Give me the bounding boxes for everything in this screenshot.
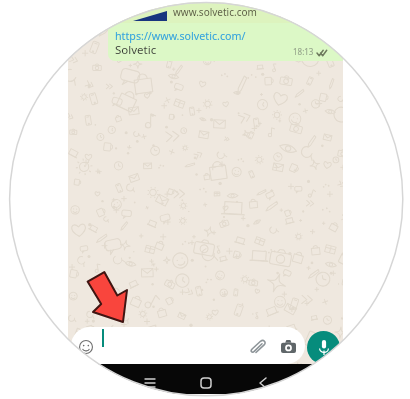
button[interactable]: Camera	[270, 328, 306, 364]
button[interactable]	[108, 23, 343, 61]
button[interactable]: Recents	[140, 373, 160, 393]
staticText: Solvetic	[115, 42, 157, 58]
staticText: 18:13	[293, 46, 314, 57]
button[interactable]: Attach	[239, 330, 275, 366]
button[interactable]: Voice message	[307, 331, 340, 364]
staticText: https://www.solvetic.com/	[115, 29, 246, 44]
button[interactable]	[71, 327, 305, 364]
button[interactable]: Back	[253, 373, 273, 393]
button[interactable]: Home	[196, 373, 216, 393]
staticText: www.solvetic.com	[173, 5, 257, 19]
button[interactable]: Emoji	[68, 329, 104, 365]
